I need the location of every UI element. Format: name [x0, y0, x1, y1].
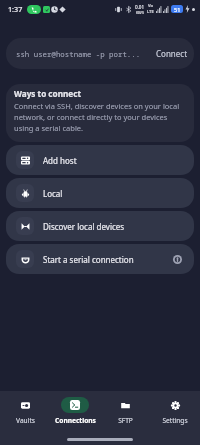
staticText: 0.01 [135, 4, 145, 10]
staticText: Ways to connect [14, 88, 82, 99]
button[interactable]: Discover local devices [6, 211, 194, 241]
staticText: KB/S [136, 10, 144, 15]
staticText: LTE [147, 9, 154, 15]
button[interactable]: Add host [6, 145, 194, 175]
staticText: Vo [148, 3, 153, 9]
button[interactable]: Local [6, 178, 194, 208]
staticText: Local [43, 188, 63, 199]
button[interactable]: SFTP [100, 397, 150, 425]
staticText: Settings [162, 416, 188, 425]
staticText: 1:37 [8, 4, 23, 14]
staticText: Connections [55, 416, 96, 425]
staticText: Discover local devices [43, 221, 125, 232]
staticText: Connect via SSH, discover devices on you… [14, 101, 186, 133]
staticText: SFTP [118, 416, 133, 425]
button[interactable]: Start a serial connection [6, 244, 194, 274]
staticText: ssh user@hostname -p port... [16, 49, 141, 59]
button[interactable]: Connections [50, 397, 100, 425]
staticText: Connect [156, 48, 188, 59]
staticText: 51 [174, 6, 181, 13]
staticText: Add host [43, 155, 77, 166]
button[interactable]: More info [169, 251, 185, 267]
button[interactable]: Vaults [0, 397, 50, 425]
staticText: Vaults [16, 416, 35, 425]
staticText: Start a serial connection [43, 254, 134, 265]
button[interactable]: Settings [150, 397, 200, 425]
button[interactable]: ssh user@hostname -p port... [6, 38, 194, 69]
